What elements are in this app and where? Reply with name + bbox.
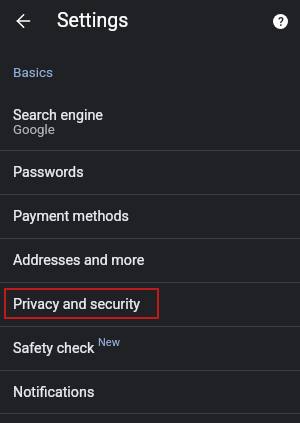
button[interactable]: Help (264, 3, 296, 39)
button[interactable]: Search engine (0, 96, 300, 150)
staticText: Search engine (13, 107, 103, 124)
staticText: ? (278, 15, 284, 29)
button[interactable]: Passwords (0, 151, 300, 194)
staticText: New (98, 336, 120, 349)
button[interactable]: Safety check (0, 327, 300, 370)
staticText: Passwords (13, 164, 84, 181)
staticText: Basics (13, 64, 54, 80)
button[interactable]: Notifications (0, 371, 300, 413)
button[interactable]: Addresses and more (0, 239, 300, 282)
staticText: Settings (57, 9, 129, 32)
staticText: Addresses and more (13, 252, 145, 269)
staticText: Privacy and security (13, 296, 141, 313)
staticText: Google (13, 122, 55, 137)
staticText: Payment methods (13, 208, 129, 225)
button[interactable]: Privacy and security (0, 283, 300, 326)
staticText: Notifications (13, 384, 95, 401)
button[interactable]: Back (5, 0, 41, 41)
staticText: Safety check (13, 340, 95, 357)
button[interactable]: Payment methods (0, 195, 300, 238)
